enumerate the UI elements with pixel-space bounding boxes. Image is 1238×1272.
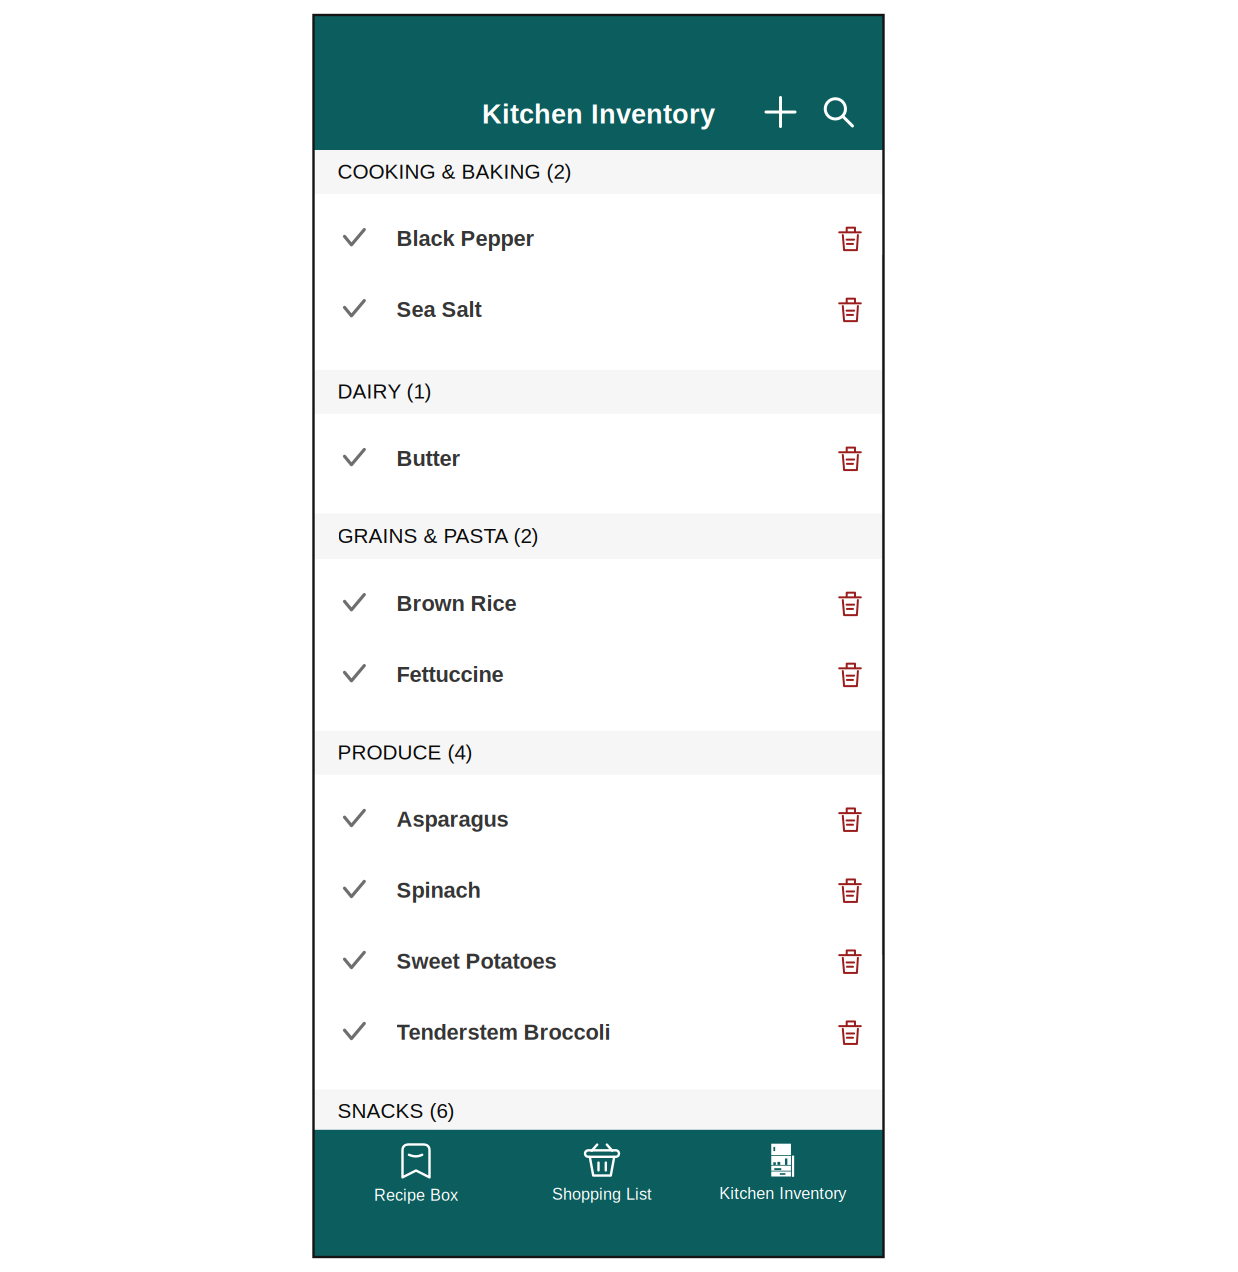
staticText: Shopping List — [552, 1185, 652, 1203]
staticText: Recipe Box — [374, 1186, 458, 1204]
button[interactable]: Delete Spinach — [823, 864, 877, 918]
staticText: Kitchen Inventory — [482, 99, 715, 129]
staticText: DAIRY (1) — [337, 380, 431, 403]
button[interactable]: Shopping List — [522, 1130, 682, 1257]
staticText: Kitchen Inventory — [719, 1184, 846, 1202]
button[interactable]: Delete Sweet Potatoes — [823, 935, 877, 989]
button[interactable]: Kitchen Inventory — [703, 1130, 863, 1257]
staticText: Butter — [396, 446, 460, 470]
button[interactable]: Delete Butter — [823, 432, 877, 486]
staticText: Spinach — [396, 878, 480, 902]
button[interactable]: Recipe Box — [336, 1130, 496, 1257]
staticText: SNACKS (6) — [337, 1099, 454, 1122]
button[interactable]: Delete Fettuccine — [823, 648, 877, 702]
button[interactable]: Delete Black Pepper — [823, 212, 877, 266]
staticText: Asparagus — [396, 807, 508, 831]
button[interactable]: Delete Tenderstem Broccoli — [823, 1006, 877, 1060]
button[interactable]: Search — [809, 84, 867, 140]
staticText: PRODUCE (4) — [337, 741, 472, 764]
staticText: Sweet Potatoes — [396, 949, 556, 973]
staticText: Brown Rice — [396, 591, 516, 616]
staticText: Black Pepper — [396, 226, 534, 251]
button[interactable]: Delete Asparagus — [823, 793, 877, 847]
staticText: GRAINS & PASTA (2) — [337, 524, 538, 547]
button[interactable]: Delete Sea Salt — [823, 283, 877, 337]
button[interactable]: Add item — [751, 84, 809, 140]
staticText: COOKING & BAKING (2) — [337, 160, 571, 183]
staticText: Fettuccine — [396, 662, 503, 687]
button[interactable]: Delete Brown Rice — [823, 577, 877, 631]
staticText: Sea Salt — [396, 297, 481, 322]
staticText: Tenderstem Broccoli — [396, 1020, 610, 1044]
